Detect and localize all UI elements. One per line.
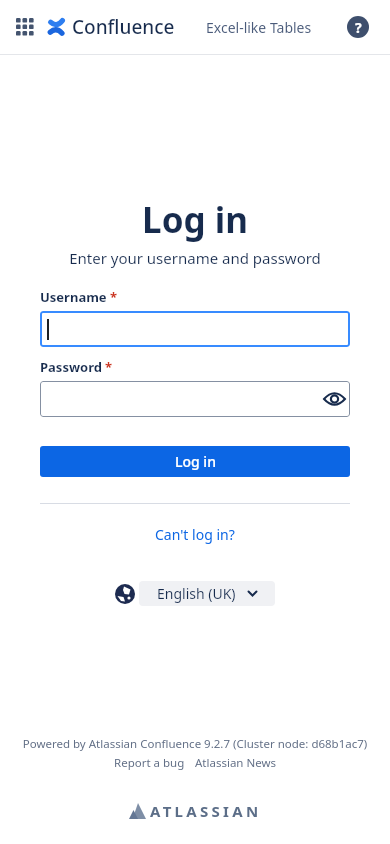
staticText: Atlassian News — [195, 755, 276, 771]
staticText: ATLASSIAN — [150, 801, 262, 821]
staticText: * — [110, 288, 118, 306]
staticText: Report a bug — [114, 755, 185, 771]
staticText: * — [105, 358, 113, 376]
staticText: Confluence — [72, 14, 175, 40]
staticText: Username — [40, 288, 107, 306]
button[interactable]: ? — [347, 16, 369, 38]
staticText: Enter your username and password — [0, 248, 390, 268]
staticText: Powered by Atlassian Confluence 9.2.7 (C… — [0, 736, 390, 752]
staticText: Can't log in? — [155, 525, 235, 544]
button[interactable] — [40, 381, 350, 417]
button[interactable]: Report a bug — [114, 755, 185, 771]
staticText: Password — [40, 358, 102, 376]
staticText: Log in — [175, 452, 216, 471]
button[interactable]: Log in — [40, 446, 350, 477]
button[interactable]: Confluence — [48, 14, 175, 40]
staticText: Excel-like Tables — [206, 18, 312, 37]
button[interactable] — [16, 18, 34, 36]
button[interactable]: Atlassian News — [195, 755, 276, 771]
staticText: Log in — [0, 196, 390, 244]
staticText: ? — [355, 18, 362, 37]
staticText: English (UK) — [157, 584, 236, 603]
button[interactable]: English (UK) — [139, 581, 275, 606]
button[interactable] — [40, 311, 350, 347]
button[interactable]: Can't log in? — [151, 521, 239, 548]
